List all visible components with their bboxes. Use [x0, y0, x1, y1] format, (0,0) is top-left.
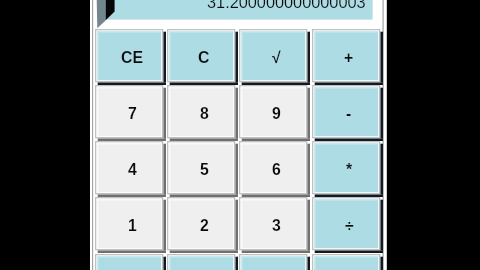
- staticText: 4: [128, 161, 137, 179]
- staticText: C: [198, 49, 210, 67]
- button[interactable]: +: [312, 29, 383, 85]
- staticText: -: [346, 105, 352, 123]
- staticText: 31.200000000000003: [207, 0, 366, 11]
- button[interactable]: 8: [167, 85, 238, 141]
- button[interactable]: 6: [239, 141, 310, 197]
- button[interactable]: 3: [239, 197, 310, 253]
- button[interactable]: 0: [95, 254, 166, 270]
- button[interactable]: 7: [95, 85, 166, 141]
- button[interactable]: +/-: [239, 254, 310, 270]
- staticText: √: [272, 49, 281, 67]
- button[interactable]: ÷: [312, 197, 383, 253]
- button[interactable]: 5: [167, 141, 238, 197]
- button[interactable]: .: [167, 254, 238, 270]
- staticText: 8: [200, 105, 209, 123]
- staticText: *: [346, 161, 353, 179]
- button[interactable]: C: [167, 29, 238, 85]
- staticText: CE: [121, 49, 143, 67]
- staticText: +: [344, 49, 354, 67]
- staticText: 6: [272, 161, 281, 179]
- button[interactable]: 2: [167, 197, 238, 253]
- staticText: 5: [200, 161, 209, 179]
- staticText: ÷: [345, 217, 354, 235]
- button[interactable]: 9: [239, 85, 310, 141]
- staticText: 9: [272, 105, 281, 123]
- staticText: 1: [128, 217, 137, 235]
- button[interactable]: =: [312, 254, 383, 270]
- staticText: 3: [272, 217, 281, 235]
- button[interactable]: *: [312, 141, 383, 197]
- staticText: 2: [200, 217, 209, 235]
- button[interactable]: 1: [95, 197, 166, 253]
- button[interactable]: 4: [95, 141, 166, 197]
- button[interactable]: -: [312, 85, 383, 141]
- staticText: 7: [128, 105, 137, 123]
- button[interactable]: CE: [95, 29, 166, 85]
- button[interactable]: √: [239, 29, 310, 85]
